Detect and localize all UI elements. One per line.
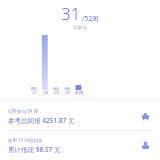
staticText: /52周 — [82, 14, 99, 23]
button[interactable]: Rewards detail — [138, 109, 152, 123]
staticText: 29 — [54, 90, 59, 95]
staticText: 30 — [65, 90, 70, 95]
staticText: 已参与 — [0, 25, 160, 31]
button[interactable]: Coupon detail — [138, 138, 152, 152]
staticText: 累计抵现 98.57 元 — [8, 145, 61, 154]
staticText: 使用 17 张抵扣金 — [8, 137, 43, 143]
button[interactable]: 使用 17 张抵扣金 — [0, 131, 160, 159]
button[interactable]: 已经参与 34 周 — [0, 102, 160, 130]
staticText: 参考总回报 4251.87 元 — [8, 116, 75, 125]
staticText: 已经参与 34 周 — [8, 108, 38, 114]
staticText: 28 — [43, 90, 48, 95]
staticText: 27 — [32, 90, 37, 95]
staticText: 本周 — [75, 90, 83, 95]
staticText: 31 — [61, 2, 81, 25]
